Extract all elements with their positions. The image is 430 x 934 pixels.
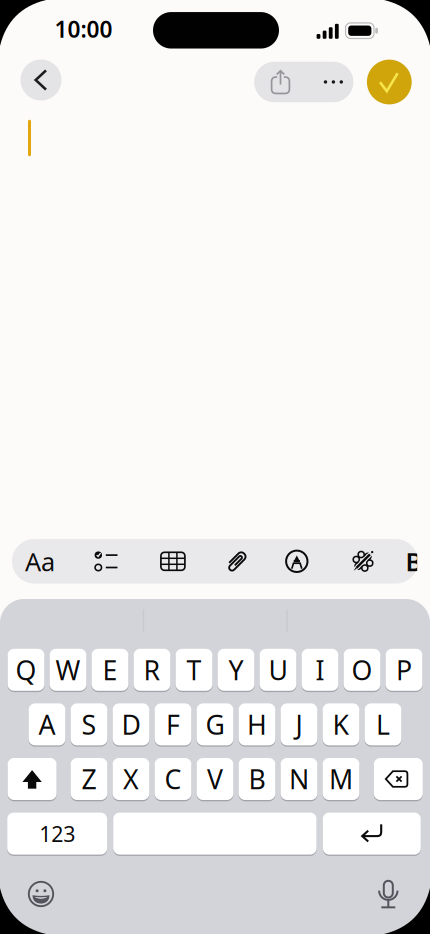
- staticText: N: [289, 761, 309, 797]
- button[interactable]: [80, 539, 134, 583]
- button[interactable]: R: [134, 649, 170, 691]
- button[interactable]: [19, 872, 63, 916]
- button[interactable]: G: [197, 703, 233, 745]
- staticText: B: [248, 761, 265, 797]
- button[interactable]: [210, 539, 264, 583]
- staticText: Q: [15, 652, 36, 687]
- staticText: F: [166, 707, 180, 742]
- staticText: M: [329, 761, 353, 797]
- staticText: S: [81, 707, 96, 742]
- button[interactable]: O: [344, 649, 380, 691]
- button[interactable]: [113, 813, 317, 855]
- button[interactable]: S: [71, 703, 107, 745]
- staticText: Z: [81, 761, 96, 797]
- button[interactable]: [366, 872, 410, 916]
- button[interactable]: K: [323, 703, 359, 745]
- button[interactable]: M: [323, 758, 359, 800]
- button[interactable]: W: [50, 649, 86, 691]
- staticText: P: [396, 652, 412, 687]
- staticText: A: [38, 707, 55, 742]
- staticText: H: [247, 707, 267, 742]
- button[interactable]: [146, 539, 200, 583]
- staticText: D: [121, 707, 140, 742]
- button[interactable]: H: [239, 703, 275, 745]
- button[interactable]: [367, 60, 412, 104]
- staticText: 123: [39, 819, 75, 848]
- button[interactable]: T: [176, 649, 212, 691]
- staticText: G: [205, 707, 224, 742]
- button[interactable]: N: [281, 758, 317, 800]
- button[interactable]: B: [239, 758, 275, 800]
- button[interactable]: X: [113, 758, 149, 800]
- button[interactable]: Z: [71, 758, 107, 800]
- button[interactable]: P: [386, 649, 422, 691]
- button[interactable]: [254, 62, 304, 102]
- button[interactable]: [20, 59, 61, 100]
- button[interactable]: C: [155, 758, 191, 800]
- staticText: K: [332, 707, 349, 742]
- button[interactable]: [270, 539, 324, 583]
- button[interactable]: Q: [8, 649, 44, 691]
- button[interactable]: J: [281, 703, 317, 745]
- staticText: J: [295, 707, 302, 742]
- button[interactable]: [8, 758, 57, 800]
- staticText: U: [268, 652, 287, 687]
- staticText: C: [164, 761, 181, 797]
- staticText: Aa: [25, 544, 55, 578]
- button[interactable]: A: [29, 703, 65, 745]
- button[interactable]: E: [92, 649, 128, 691]
- staticText: R: [143, 652, 160, 687]
- staticText: X: [123, 761, 139, 797]
- button[interactable]: D: [113, 703, 149, 745]
- staticText: T: [186, 652, 201, 687]
- staticText: W: [55, 652, 80, 687]
- staticText: 10:00: [54, 14, 112, 44]
- button[interactable]: V: [197, 758, 233, 800]
- button[interactable]: [374, 758, 423, 800]
- button[interactable]: B: [402, 539, 426, 583]
- button[interactable]: F: [155, 703, 191, 745]
- staticText: Y: [228, 652, 243, 687]
- button[interactable]: I: [302, 649, 338, 691]
- button[interactable]: [336, 539, 390, 583]
- staticText: E: [102, 652, 117, 687]
- button[interactable]: L: [365, 703, 401, 745]
- staticText: O: [351, 652, 372, 687]
- staticText: L: [376, 707, 390, 742]
- staticText: B: [405, 544, 422, 578]
- button[interactable]: Aa: [13, 539, 67, 583]
- staticText: I: [315, 652, 324, 687]
- button[interactable]: U: [260, 649, 296, 691]
- button[interactable]: [304, 62, 353, 102]
- button[interactable]: [323, 813, 421, 855]
- button[interactable]: Y: [218, 649, 254, 691]
- button[interactable]: 123: [7, 813, 107, 855]
- staticText: V: [207, 761, 223, 797]
